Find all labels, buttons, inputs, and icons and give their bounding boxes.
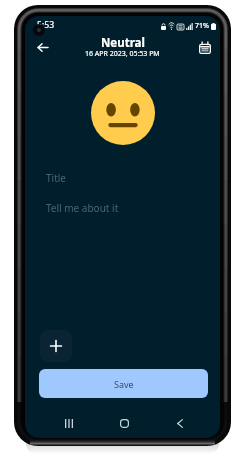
staticText: Tell me about it [46, 201, 119, 215]
button[interactable]: Back [170, 413, 190, 433]
button[interactable]: Pick date [195, 38, 215, 58]
staticText: 71% [195, 21, 209, 31]
staticText: Save [114, 378, 134, 390]
staticText: 5:53 [37, 19, 55, 31]
staticText: Neutral [101, 35, 145, 51]
staticText: 16 APR 2023, 05:53 PM [85, 49, 160, 59]
button[interactable]: Save [39, 369, 208, 398]
staticText: Title [46, 171, 66, 185]
button[interactable]: Back [32, 37, 52, 57]
button[interactable]: Home [114, 413, 134, 433]
button[interactable]: Recent apps [59, 413, 79, 433]
button[interactable]: Add image [40, 330, 72, 362]
